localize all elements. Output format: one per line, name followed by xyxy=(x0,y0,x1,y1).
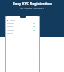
button[interactable]: Verified xyxy=(5,29,40,32)
button[interactable] xyxy=(5,32,40,35)
staticText: Easy KYC Registration xyxy=(13,1,52,6)
button[interactable]: Menu xyxy=(5,19,40,21)
button[interactable]: Verified xyxy=(5,22,40,25)
staticText: for Mobile Numbers xyxy=(20,6,44,9)
button[interactable]: Verified xyxy=(5,25,40,28)
